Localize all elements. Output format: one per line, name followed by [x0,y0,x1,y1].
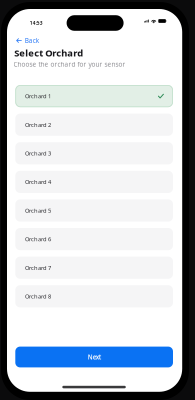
button[interactable]: Orchard 7 [15,257,173,279]
staticText: Select Orchard [14,47,83,59]
staticText: Next [88,353,101,361]
button[interactable]: Next [15,347,173,367]
button[interactable]: Orchard 4 [15,171,173,193]
staticText: 14:53 [30,20,43,26]
staticText: Orchard 3 [25,149,51,157]
button[interactable]: Back [15,35,40,46]
button[interactable]: Orchard 1 [15,85,173,107]
button[interactable]: Orchard 3 [15,142,173,164]
staticText: Orchard 4 [25,178,51,186]
staticText: Choose the orchard for your sensor [14,60,126,68]
button[interactable]: Orchard 8 [15,285,173,307]
staticText: Orchard 5 [25,207,51,214]
button[interactable]: Orchard 6 [15,228,173,250]
button[interactable]: Orchard 5 [15,199,173,222]
staticText: Orchard 1 [25,92,51,100]
button[interactable]: Orchard 2 [15,114,173,136]
staticText: Orchard 6 [25,235,51,243]
staticText: Orchard 7 [25,264,51,272]
staticText: Orchard 8 [25,292,51,300]
staticText: Back [25,36,39,45]
staticText: Orchard 2 [25,121,51,129]
